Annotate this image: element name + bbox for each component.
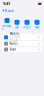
button[interactable]: mail <box>32 20 42 29</box>
staticText: video <box>23 26 31 29</box>
staticText: mail <box>34 26 39 29</box>
staticText: Mobile <box>9 32 19 35</box>
button[interactable]: Mobile <box>2 34 42 41</box>
button[interactable]: Back <box>0 7 15 14</box>
staticText: message <box>2 24 12 31</box>
staticText: Share <box>9 48 16 51</box>
staticText: +1 555 0134 <box>9 36 20 43</box>
button[interactable]: video <box>22 20 32 29</box>
button[interactable]: message <box>2 18 12 31</box>
button[interactable]: call <box>12 20 22 29</box>
staticText: ▮▮▮ <box>38 2 41 5</box>
staticText: Back <box>4 8 13 13</box>
button[interactable]: Share <box>2 47 42 52</box>
staticText: Notes <box>9 42 17 45</box>
button[interactable]: Notes <box>2 41 42 46</box>
staticText: 9:41 <box>3 1 10 6</box>
staticText: call <box>15 26 19 29</box>
